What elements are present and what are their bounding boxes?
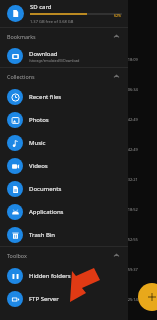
button[interactable]: Music xyxy=(0,131,128,154)
button[interactable]: 30:18:52 xyxy=(0,194,157,224)
staticText: Documents xyxy=(29,185,62,193)
button[interactable]: 07:06:34 xyxy=(0,74,157,104)
staticText: Bookmarks xyxy=(7,33,36,40)
staticText: 26:25:14 xyxy=(122,297,138,302)
staticText: Hidden folders xyxy=(29,272,71,280)
staticText: 18:52:55 xyxy=(122,237,138,242)
staticText: 30:18:09 xyxy=(122,57,138,62)
button[interactable]: Download xyxy=(0,45,128,67)
button[interactable]: Photos xyxy=(0,108,128,131)
staticText: SD card xyxy=(30,3,52,11)
button[interactable]: Documents xyxy=(0,177,128,200)
button[interactable]: FTP Server xyxy=(0,287,128,310)
button[interactable]: 18:52:55 xyxy=(0,224,157,254)
staticText: 07:06:34 xyxy=(122,87,138,92)
staticText: 15:42:49 xyxy=(122,147,138,152)
button[interactable]: Videos xyxy=(0,154,128,177)
button[interactable]: 00:59:37 xyxy=(0,254,157,284)
staticText: 10:32:21 xyxy=(122,177,138,182)
staticText: 30:18:52 xyxy=(122,207,138,212)
staticText: 15:42:49 xyxy=(122,117,138,122)
staticText: Trash Bin xyxy=(29,231,56,239)
staticText: Recent files xyxy=(29,93,62,101)
button[interactable]: Hidden folders xyxy=(0,264,128,287)
staticText: FTP Server xyxy=(29,295,59,303)
staticText: Download xyxy=(29,50,58,58)
button[interactable]: 26:25:14 xyxy=(0,284,157,314)
staticText: 00:59:37 xyxy=(122,267,138,272)
button[interactable]: Collapse Toolbox xyxy=(112,251,121,260)
staticText: 62% xyxy=(114,13,122,18)
staticText: /storage/emulated/0/Download xyxy=(29,58,80,63)
button[interactable]: Applications xyxy=(0,200,128,223)
button[interactable]: Add xyxy=(138,283,157,311)
button[interactable]: 15:42:49 xyxy=(0,134,157,164)
staticText: Music xyxy=(29,139,46,147)
staticText: Collections xyxy=(7,73,35,80)
button[interactable]: Trash Bin xyxy=(0,223,128,246)
button[interactable]: SD card xyxy=(0,0,128,27)
button[interactable]: 10:32:21 xyxy=(0,164,157,194)
staticText: Toolbox xyxy=(7,252,27,259)
staticText: 1.37 GB free of 3.68 GB xyxy=(30,19,74,24)
staticText: Photos xyxy=(29,116,49,124)
button[interactable]: Collapse Bookmarks xyxy=(112,32,121,41)
button[interactable]: Collapse Collections xyxy=(112,72,121,81)
button[interactable]: Recent files xyxy=(0,85,128,108)
staticText: Applications xyxy=(29,208,64,216)
staticText: Videos xyxy=(29,162,48,170)
button[interactable]: 15:42:49 xyxy=(0,104,157,134)
button[interactable]: 30:18:09 xyxy=(0,44,157,74)
